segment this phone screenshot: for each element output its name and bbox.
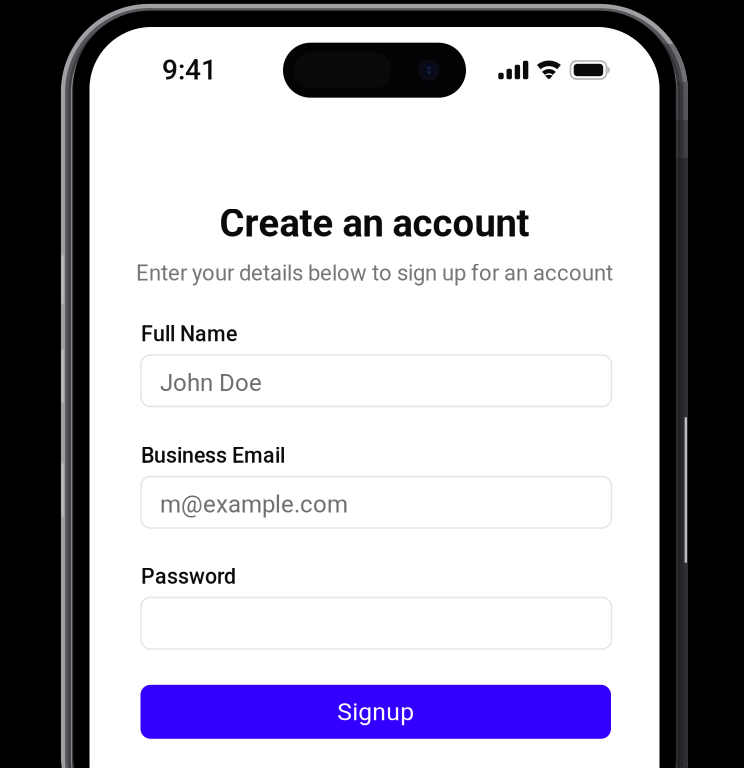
staticText: Enter your details below to sign up for … (136, 260, 613, 286)
staticText: 9:41 (162, 54, 217, 86)
button[interactable]: Signup (140, 685, 611, 739)
staticText: Create an account (219, 201, 529, 246)
staticText: Full Name (141, 321, 237, 346)
staticText: Business Email (141, 443, 285, 468)
button[interactable]: Business Email (141, 476, 611, 528)
staticText: John Doe (160, 369, 262, 397)
staticText: Signup (337, 697, 414, 726)
staticText: Password (141, 564, 236, 589)
staticText: m@example.com (160, 490, 348, 518)
button[interactable]: Full Name (141, 355, 611, 406)
button[interactable]: Password (141, 597, 611, 649)
